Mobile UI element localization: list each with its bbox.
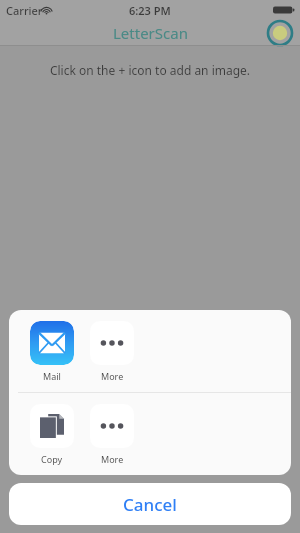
staticText: More: [101, 453, 124, 465]
staticText: 6:23 PM: [129, 3, 171, 18]
button[interactable]: Scan: [268, 21, 292, 45]
staticText: Cancel: [123, 493, 177, 516]
staticText: More: [101, 370, 124, 382]
button[interactable]: Mail: [25, 321, 79, 382]
button[interactable]: Cancel: [9, 483, 291, 525]
staticText: Copy: [41, 453, 63, 465]
staticText: LetterScan: [113, 23, 188, 43]
button[interactable]: More: [85, 404, 139, 465]
staticText: Carrier: [6, 3, 43, 18]
staticText: Click on the + icon to add an image.: [10, 62, 290, 78]
staticText: Mail: [43, 370, 61, 382]
button[interactable]: More: [85, 321, 139, 382]
button[interactable]: Copy: [25, 404, 79, 465]
